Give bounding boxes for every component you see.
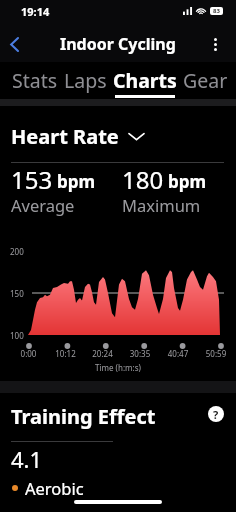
staticText: bpm [57,170,96,193]
staticText: 83 [213,7,220,15]
button[interactable]: Laps [64,67,107,94]
button[interactable]: Help [208,406,224,422]
button[interactable]: Heart Rate [11,123,145,150]
staticText: 100 [10,330,24,341]
staticText: 10:12 [47,348,84,359]
staticText: ? [213,407,219,422]
button[interactable]: More options [201,28,229,60]
staticText: 200 [10,246,24,257]
staticText: Aerobic [25,477,84,499]
staticText: Maximum [122,194,201,216]
staticText: 30:35 [121,348,159,359]
button[interactable]: Charts [113,67,177,94]
staticText: 20:24 [84,348,121,359]
staticText: bpm [168,170,207,193]
staticText: Time (h:m:s) [95,362,141,373]
staticText: Heart Rate [11,123,119,150]
staticText: 180 [122,163,164,196]
staticText: 150 [10,288,24,299]
staticText: 153 [11,163,53,196]
staticText: Gear [183,67,228,94]
staticText: Charts [113,67,177,94]
button[interactable]: Stats [12,67,58,94]
staticText: Indoor Cycling [60,33,176,55]
staticText: Stats [12,67,58,94]
staticText: Laps [64,67,107,94]
staticText: Average [11,194,75,216]
staticText: 4.1 [11,444,43,474]
button[interactable]: Training Effect [11,403,156,430]
staticText: 50:59 [197,348,235,359]
button[interactable]: Gear [183,67,228,94]
staticText: 0:00 [10,348,47,359]
button[interactable]: Back [0,28,28,60]
staticText: 19:14 [21,4,50,19]
staticText: 40:47 [159,348,197,359]
